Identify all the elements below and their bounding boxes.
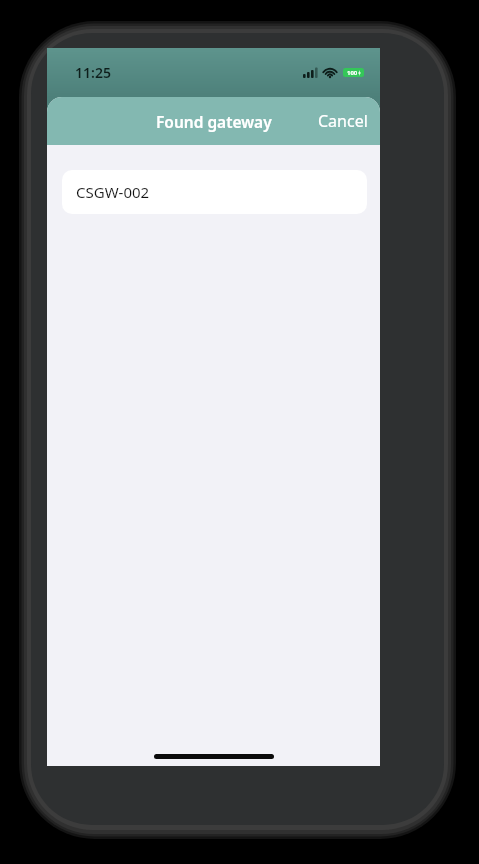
staticText: CSGW-002 [76, 182, 150, 202]
button[interactable]: CSGW-002 [62, 170, 367, 214]
staticText: Cancel [318, 110, 368, 132]
button[interactable]: Cancel [306, 98, 380, 144]
staticText: 11:25 [75, 63, 111, 82]
staticText: Found gateway [156, 111, 272, 132]
staticText: 100 [347, 69, 358, 77]
